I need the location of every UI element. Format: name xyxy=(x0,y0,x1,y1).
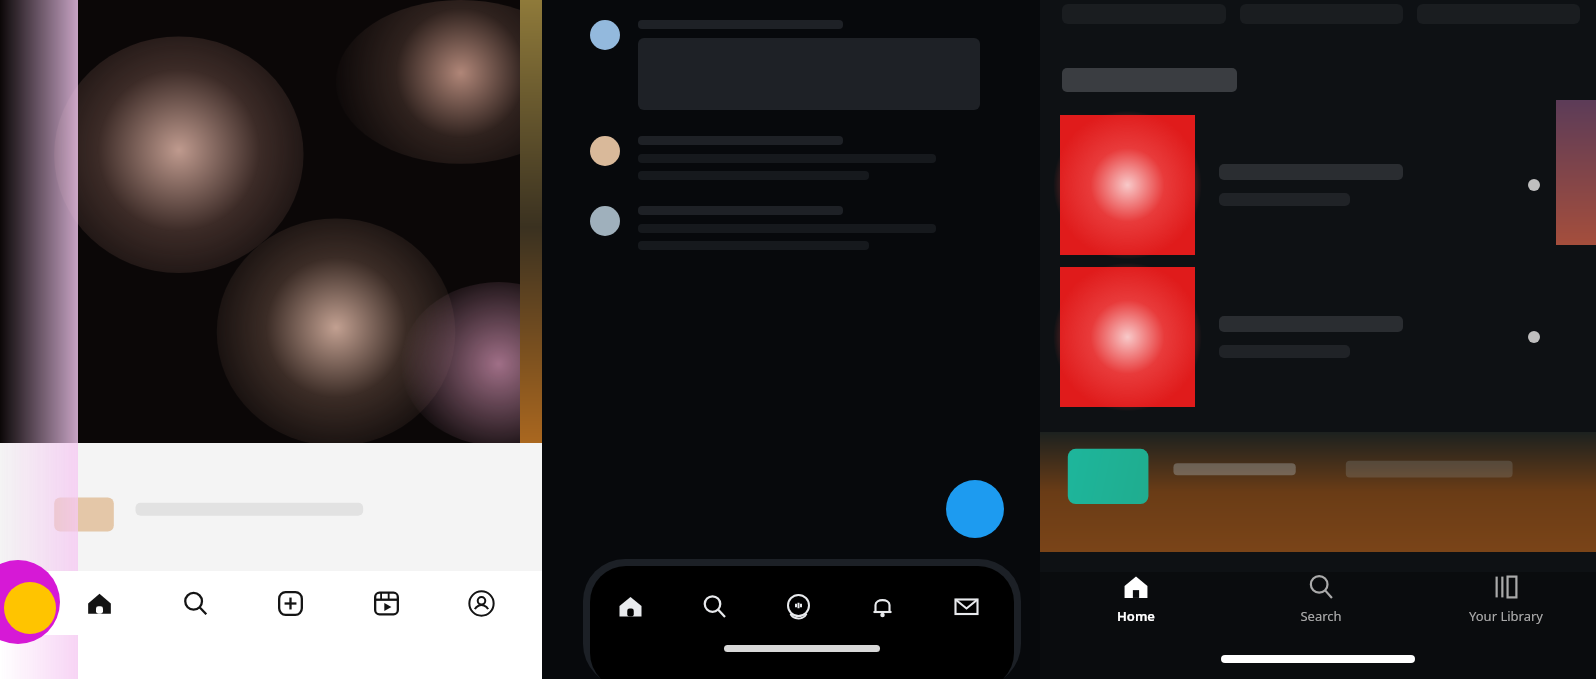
button[interactable]: More options xyxy=(1516,319,1552,355)
button[interactable]: More options xyxy=(1516,167,1552,203)
button[interactable]: Search xyxy=(1261,572,1381,625)
button[interactable]: Search xyxy=(168,571,222,635)
button[interactable]: Your Library xyxy=(1446,572,1566,625)
staticText: Home xyxy=(1117,607,1155,625)
staticText: Your Library xyxy=(1469,607,1543,625)
button[interactable]: Search xyxy=(686,581,742,631)
button[interactable]: Home xyxy=(1076,572,1196,625)
button[interactable]: Profile xyxy=(454,571,508,635)
button[interactable]: Reels xyxy=(359,571,413,635)
button[interactable]: Home xyxy=(602,581,658,631)
button[interactable]: Messages xyxy=(938,581,994,631)
button[interactable] xyxy=(1040,432,1596,552)
button[interactable]: Grok xyxy=(770,581,826,631)
button[interactable]: Create xyxy=(263,571,317,635)
button[interactable]: Compose post xyxy=(946,480,1004,538)
button[interactable]: Notifications xyxy=(854,581,910,631)
staticText: Search xyxy=(1300,607,1342,625)
button[interactable]: Home xyxy=(72,571,126,635)
